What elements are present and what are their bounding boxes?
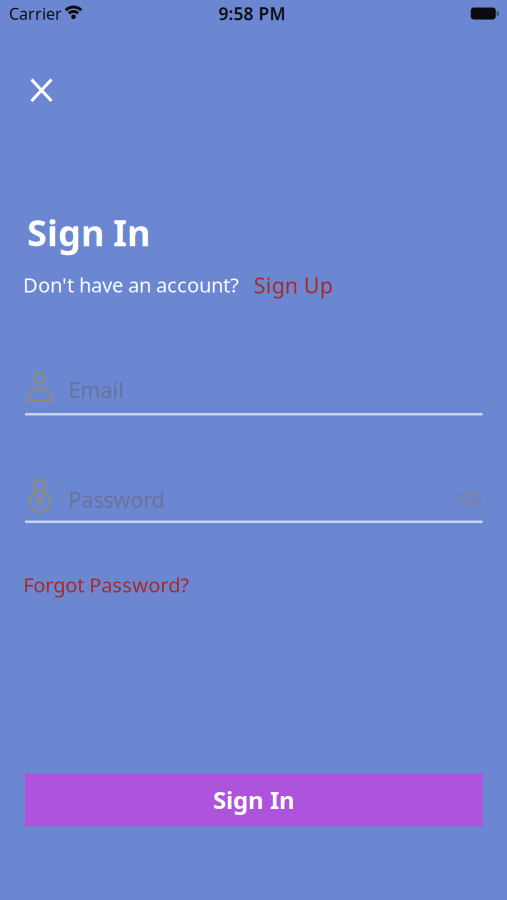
staticText: Don't have an account? [23, 271, 239, 298]
staticText: Sign In [213, 784, 295, 816]
button[interactable]: Show Password [458, 489, 482, 509]
staticText: Carrier [9, 3, 62, 24]
staticText: 9:58 PM [218, 2, 285, 25]
button[interactable]: Email [25, 365, 482, 415]
staticText: Password [68, 485, 164, 514]
button[interactable]: Sign Up [254, 271, 333, 299]
button[interactable]: Forgot Password? [23, 571, 189, 598]
staticText: Forgot Password? [23, 571, 189, 598]
button[interactable]: Password [25, 478, 482, 523]
staticText: Sign In [27, 208, 150, 256]
staticText: Email [68, 375, 124, 404]
button[interactable]: Sign In [25, 773, 483, 826]
button[interactable]: Close [30, 78, 53, 102]
staticText: Sign Up [254, 271, 333, 299]
